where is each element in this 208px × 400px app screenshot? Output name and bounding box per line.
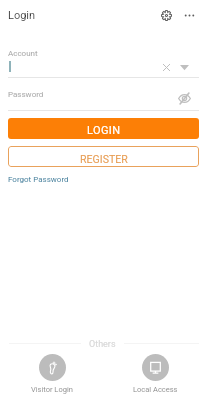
staticText: LOGIN <box>87 124 121 137</box>
button[interactable]: More options <box>177 3 202 28</box>
button[interactable]: LOGIN <box>8 118 199 139</box>
button[interactable]: Forgot Password <box>8 175 69 184</box>
staticText: Login <box>8 9 36 22</box>
button[interactable]: Local Access <box>115 354 195 394</box>
staticText: Visitor Login <box>31 385 73 394</box>
staticText: Local Access <box>133 385 178 394</box>
button[interactable]: Visitor Login <box>12 354 92 394</box>
button[interactable]: Show saved accounts <box>173 56 196 79</box>
button[interactable]: REGISTER <box>8 146 199 167</box>
button[interactable]: Show password <box>173 87 196 110</box>
staticText: Others <box>89 339 116 350</box>
button[interactable]: Settings <box>154 3 179 28</box>
staticText: Password <box>8 90 44 99</box>
button[interactable]: Login <box>8 9 36 22</box>
staticText: REGISTER <box>80 153 128 165</box>
button[interactable]: Clear account <box>155 56 178 79</box>
staticText: Account <box>8 49 38 58</box>
staticText: Forgot Password <box>8 175 69 184</box>
